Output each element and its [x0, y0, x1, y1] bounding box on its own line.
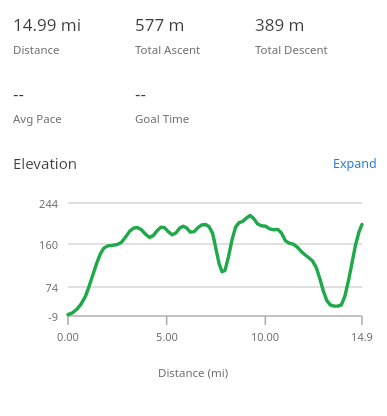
staticText: 160	[0, 237, 58, 252]
staticText: 14.99 mi	[13, 13, 82, 36]
staticText: 14.9	[332, 329, 387, 344]
staticText: --	[135, 82, 146, 105]
button[interactable]: Expand	[323, 150, 387, 177]
staticText: Avg Pace	[13, 111, 62, 127]
staticText: Expand	[333, 155, 377, 172]
staticText: Total Ascent	[135, 42, 201, 58]
staticText: Distance	[13, 42, 60, 58]
staticText: 389 m	[255, 13, 305, 36]
staticText: 0.00	[38, 329, 98, 344]
staticText: -9	[0, 309, 58, 324]
staticText: 10.00	[235, 329, 295, 344]
staticText: Total Descent	[255, 42, 328, 58]
staticText: --	[13, 82, 24, 105]
staticText: Goal Time	[135, 111, 190, 127]
staticText: Distance (mi)	[158, 365, 229, 381]
staticText: Elevation	[13, 153, 78, 173]
staticText: 74	[0, 280, 58, 295]
staticText: 577 m	[135, 13, 185, 36]
staticText: 244	[0, 196, 58, 211]
staticText: 5.00	[137, 329, 197, 344]
